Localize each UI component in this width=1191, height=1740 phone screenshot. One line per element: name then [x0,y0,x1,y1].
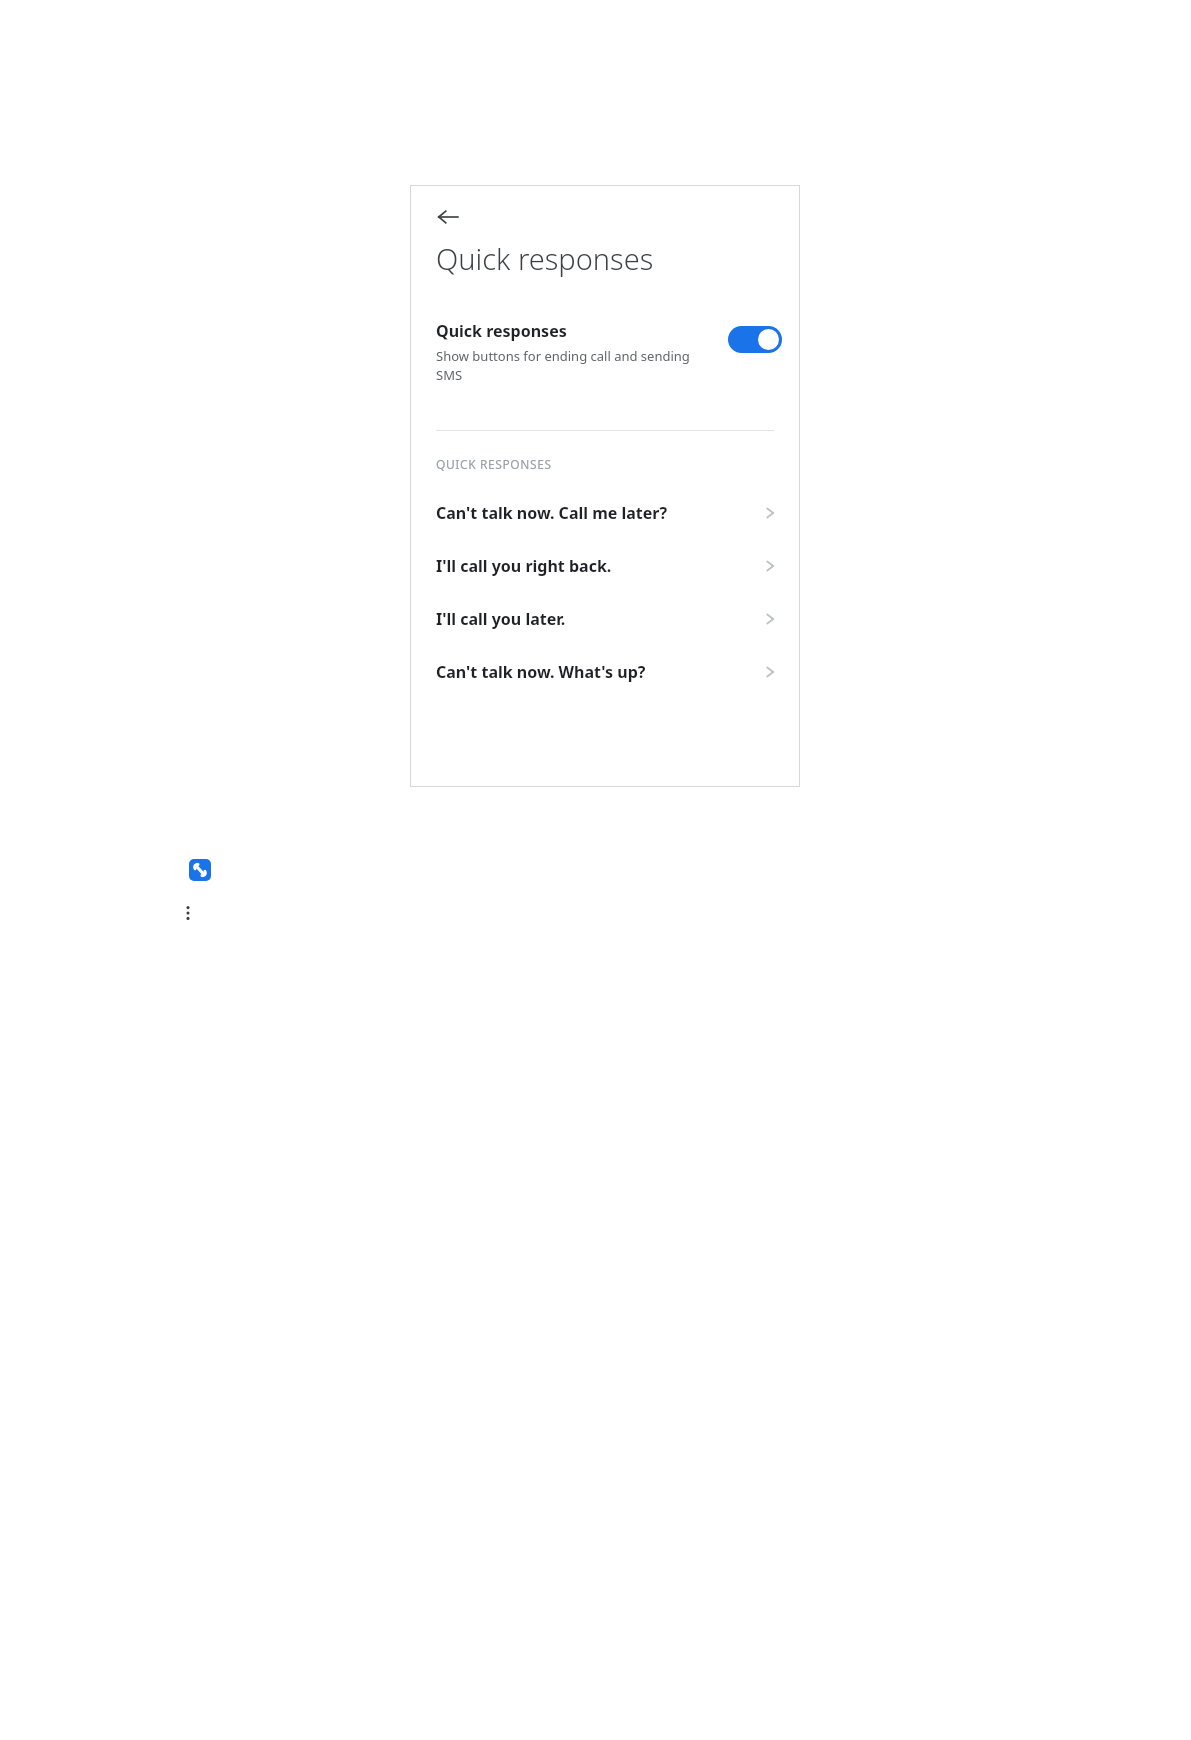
button[interactable]: Quick responses toggle [728,326,782,353]
button[interactable]: Phone app [189,859,211,881]
staticText: Quick responses [436,320,567,342]
button[interactable]: Back [424,193,472,241]
button[interactable]: Can't talk now. What's up? [410,645,800,698]
staticText: Quick responses [436,239,654,278]
staticText: I'll call you later. [436,608,762,630]
button[interactable]: Can't talk now. Call me later? [410,486,800,539]
staticText: Show buttons for ending call and sending… [436,347,716,384]
button[interactable]: I'll call you right back. [410,539,800,592]
button[interactable]: More options [170,895,206,931]
staticText: I'll call you right back. [436,555,762,577]
button[interactable]: Quick responses [410,316,800,388]
staticText: Can't talk now. What's up? [436,661,762,683]
button[interactable]: I'll call you later. [410,592,800,645]
staticText: QUICK RESPONSES [436,456,552,472]
staticText: Can't talk now. Call me later? [436,502,762,524]
